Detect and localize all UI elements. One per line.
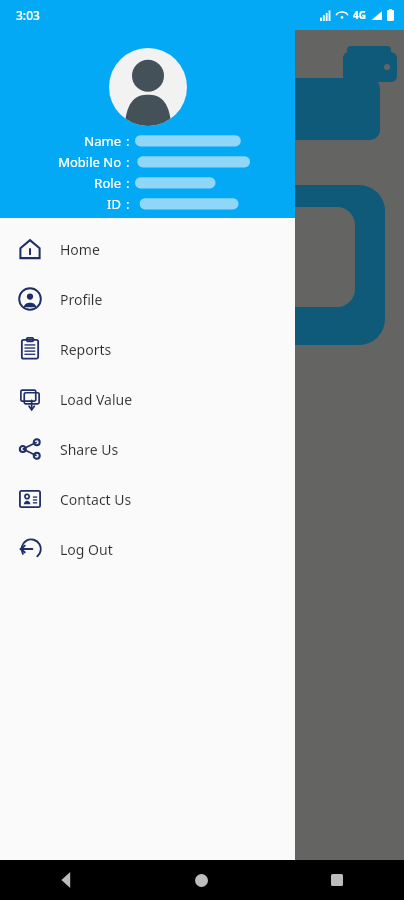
button[interactable]: Load Value	[0, 374, 295, 424]
staticText: Load Value	[60, 390, 133, 409]
staticText: ID	[0, 195, 121, 213]
button[interactable]: Home	[0, 224, 295, 274]
staticText: Home	[60, 240, 100, 259]
staticText: :	[126, 195, 130, 213]
staticText: :	[126, 132, 130, 150]
button[interactable]: Recent apps	[269, 860, 404, 900]
staticText: :	[126, 153, 130, 171]
staticText: Profile	[60, 290, 103, 309]
button[interactable]: Log Out	[0, 524, 295, 574]
button[interactable]: Share Us	[0, 424, 295, 474]
staticText: 4G	[353, 8, 366, 22]
staticText: Log Out	[60, 540, 113, 559]
staticText: Reports	[60, 340, 112, 359]
staticText: Contact Us	[60, 490, 132, 509]
button[interactable]: Reports	[0, 324, 295, 374]
staticText: Name	[0, 132, 121, 150]
button[interactable]: Contact Us	[0, 474, 295, 524]
staticText: Mobile No	[0, 153, 121, 171]
staticText: :	[126, 174, 130, 192]
button[interactable]: Back	[0, 860, 134, 900]
staticText: 3:03	[16, 7, 40, 23]
button[interactable]: Profile	[0, 274, 295, 324]
staticText: Share Us	[60, 440, 119, 459]
staticText: Role	[0, 174, 121, 192]
button[interactable]: Home	[134, 860, 269, 900]
